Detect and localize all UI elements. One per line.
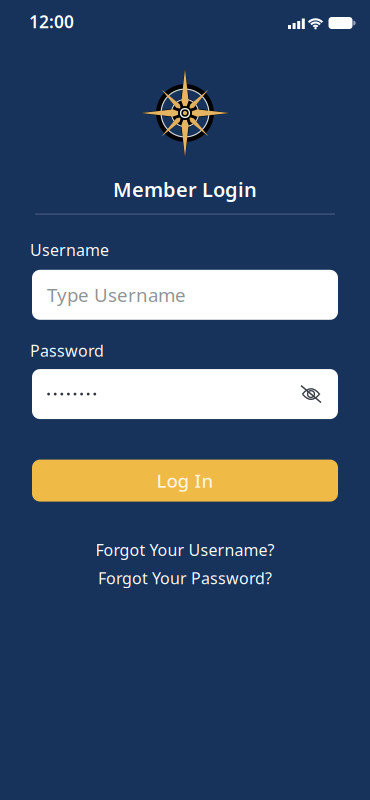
button[interactable]: Type Username xyxy=(32,270,338,320)
staticText: Member Login xyxy=(113,176,257,203)
staticText: Password xyxy=(30,340,104,361)
button[interactable]: Forgot Your Username? xyxy=(95,539,274,560)
button[interactable]: Password xyxy=(32,369,338,419)
staticText: Type Username xyxy=(47,282,186,307)
button[interactable]: Forgot Your Password? xyxy=(98,567,272,588)
button[interactable]: Log In xyxy=(32,460,338,502)
staticText: Log In xyxy=(156,468,213,493)
staticText: Username xyxy=(30,239,109,260)
button[interactable]: Show password xyxy=(300,383,322,405)
staticText: Forgot Your Username? xyxy=(95,539,274,560)
staticText: Forgot Your Password? xyxy=(98,567,272,588)
staticText: 12:00 xyxy=(29,10,74,33)
